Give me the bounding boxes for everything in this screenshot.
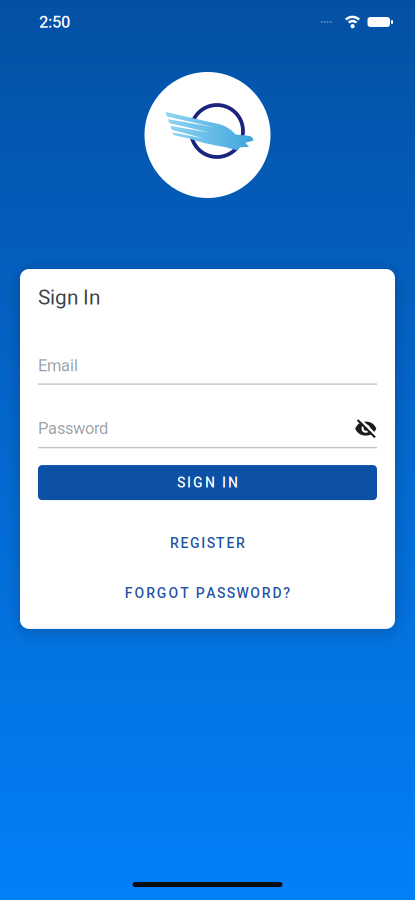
staticText: N xyxy=(205,474,215,491)
staticText: I xyxy=(201,535,205,551)
staticText: S xyxy=(177,474,185,491)
button[interactable]: F xyxy=(115,579,300,607)
staticText: ? xyxy=(283,585,290,601)
button[interactable]: S xyxy=(38,465,377,500)
staticText: D xyxy=(273,585,282,601)
staticText: R xyxy=(262,585,271,601)
staticText: Password xyxy=(38,419,108,438)
button[interactable]: R xyxy=(160,529,255,557)
staticText: E xyxy=(180,535,188,551)
staticText: F xyxy=(125,585,133,601)
staticText: I xyxy=(187,474,191,491)
staticText: S xyxy=(207,535,215,551)
staticText: R xyxy=(146,585,155,601)
staticText: G xyxy=(190,535,200,551)
staticText: G xyxy=(193,474,203,491)
staticText: N xyxy=(228,474,238,491)
staticText: Sign In xyxy=(38,285,100,310)
staticText: A xyxy=(206,585,215,601)
staticText: W xyxy=(236,585,248,601)
button[interactable]: Show password xyxy=(355,418,377,438)
staticText: O xyxy=(169,585,179,601)
staticText: S xyxy=(227,585,235,601)
staticText: G xyxy=(157,585,167,601)
staticText: O xyxy=(134,585,144,601)
staticText: Email xyxy=(38,356,78,375)
staticText: P xyxy=(196,585,205,601)
staticText: E xyxy=(226,535,234,551)
staticText: I xyxy=(222,474,226,491)
staticText: R xyxy=(236,535,245,551)
staticText: 2:50 xyxy=(39,12,70,32)
staticText: R xyxy=(170,535,179,551)
staticText: S xyxy=(217,585,225,601)
staticText: T xyxy=(216,535,225,551)
staticText: T xyxy=(180,585,189,601)
staticText: O xyxy=(250,585,260,601)
